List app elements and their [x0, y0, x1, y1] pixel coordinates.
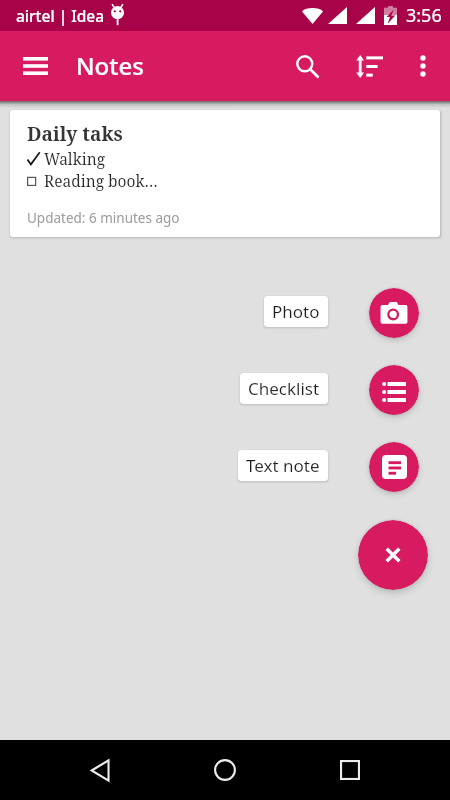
- button[interactable]: Photo: [369, 288, 419, 338]
- button[interactable]: Text note: [369, 442, 419, 492]
- button[interactable]: Sort: [345, 42, 393, 90]
- staticText: 3:56: [406, 3, 442, 28]
- staticText: airtel | Idea: [16, 5, 105, 26]
- staticText: Daily taks: [27, 121, 123, 147]
- button[interactable]: Close menu: [358, 520, 428, 590]
- staticText: Photo: [272, 300, 320, 323]
- button[interactable]: Navigation menu: [8, 42, 62, 89]
- staticText: Reading book…: [44, 170, 158, 191]
- staticText: Notes: [76, 49, 144, 82]
- button[interactable]: Home: [195, 740, 255, 800]
- staticText: Text note: [246, 454, 320, 477]
- staticText: Updated: 6 minutes ago: [27, 209, 180, 227]
- button[interactable]: Photo: [264, 296, 328, 327]
- button[interactable]: Recent apps: [320, 740, 380, 800]
- button[interactable]: More options: [399, 42, 447, 90]
- button[interactable]: Checklist: [369, 365, 419, 415]
- button[interactable]: Checklist: [240, 373, 328, 404]
- button[interactable]: Back: [70, 740, 130, 800]
- staticText: Walking: [44, 148, 106, 169]
- staticText: Checklist: [248, 377, 320, 400]
- button[interactable]: Daily taks: [10, 110, 440, 237]
- button[interactable]: Text note: [238, 450, 328, 481]
- button[interactable]: Search: [283, 42, 331, 90]
